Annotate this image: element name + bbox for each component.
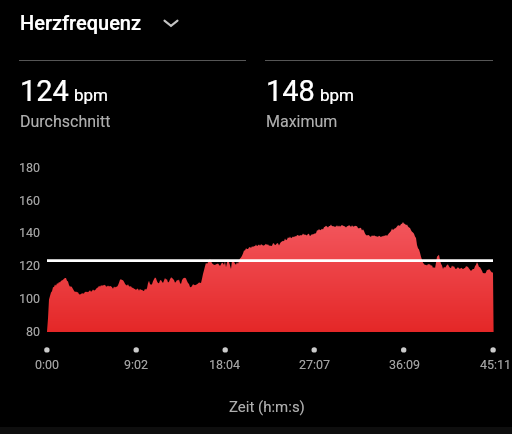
staticText: 148 — [266, 74, 315, 108]
staticText: 18:04 — [209, 357, 241, 372]
staticText: 36:09 — [389, 357, 421, 372]
staticText: Maximum — [266, 112, 338, 131]
button[interactable]: Herzfrequenz – Diagramm wechseln — [14, 7, 189, 38]
staticText: 45:11 — [480, 357, 512, 372]
staticText: Durchschnitt — [20, 112, 111, 131]
staticText: Zeit (h:m:s) — [229, 398, 305, 416]
staticText: Herzfrequenz — [20, 11, 142, 34]
staticText: 100 — [19, 291, 41, 306]
staticText: bpm — [74, 85, 108, 105]
staticText: 9:02 — [124, 357, 149, 372]
staticText: 80 — [26, 324, 41, 339]
staticText: 0:00 — [35, 357, 60, 372]
staticText: 140 — [19, 225, 41, 240]
staticText: 124 — [20, 74, 69, 108]
button[interactable]: 124 — [20, 74, 111, 131]
staticText: 120 — [19, 258, 41, 273]
staticText: 27:07 — [299, 357, 331, 372]
staticText: 160 — [19, 193, 41, 208]
staticText: 180 — [19, 160, 41, 175]
button[interactable]: 148 — [266, 74, 354, 131]
staticText: bpm — [320, 85, 354, 105]
